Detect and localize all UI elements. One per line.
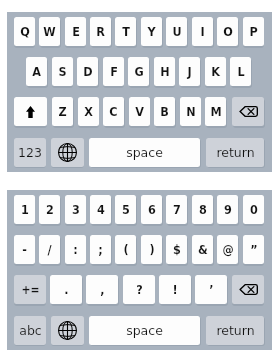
staticText: +=	[21, 283, 40, 297]
staticText: 123	[18, 145, 42, 160]
button[interactable]: D	[77, 57, 98, 86]
button[interactable]: !	[159, 275, 191, 304]
staticText: )	[149, 242, 155, 257]
button[interactable]: 2	[39, 195, 60, 224]
button[interactable]: ’	[195, 275, 227, 304]
button[interactable]: Backspace	[232, 275, 264, 304]
button[interactable]: ?	[123, 275, 155, 304]
staticText: !	[172, 282, 178, 297]
button[interactable]: -	[14, 235, 35, 264]
staticText: L	[237, 64, 245, 79]
button[interactable]: X	[78, 97, 99, 126]
button[interactable]: 8	[192, 195, 213, 224]
staticText: U	[172, 24, 182, 39]
staticText: J	[187, 64, 192, 79]
button[interactable]: 0	[243, 195, 264, 224]
button[interactable]: 4	[90, 195, 111, 224]
staticText: ;	[98, 242, 103, 257]
staticText: W	[43, 24, 56, 39]
button[interactable]: N	[180, 97, 201, 126]
button[interactable]: I	[192, 17, 213, 46]
button[interactable]: 5	[115, 195, 136, 224]
button[interactable]: S	[52, 57, 73, 86]
staticText: 9	[224, 202, 232, 217]
button[interactable]: Y	[141, 17, 162, 46]
button[interactable]: Change keyboard	[51, 316, 84, 345]
button[interactable]: /	[39, 235, 60, 264]
staticText: H	[160, 64, 170, 79]
button[interactable]: ”	[243, 235, 264, 264]
staticText: B	[160, 104, 169, 119]
staticText: 7	[173, 202, 181, 217]
button[interactable]: space	[89, 316, 200, 345]
staticText: ’	[209, 282, 214, 297]
button[interactable]: V	[129, 97, 150, 126]
button[interactable]: 123	[14, 138, 46, 167]
staticText: P	[249, 24, 258, 39]
button[interactable]: P	[243, 17, 264, 46]
staticText: :	[73, 242, 78, 257]
button[interactable]: 3	[65, 195, 86, 224]
button[interactable]: 1	[14, 195, 35, 224]
button[interactable]: O	[217, 17, 238, 46]
button[interactable]: Q	[14, 17, 35, 46]
button[interactable]: )	[141, 235, 162, 264]
staticText: V	[135, 104, 144, 119]
button[interactable]: +=	[14, 275, 46, 304]
button[interactable]: W	[39, 17, 60, 46]
button[interactable]: ,	[86, 275, 118, 304]
button[interactable]: A	[26, 57, 47, 86]
button[interactable]: 7	[166, 195, 187, 224]
button[interactable]: E	[65, 17, 86, 46]
button[interactable]: M	[205, 97, 226, 126]
staticText: space	[126, 323, 163, 338]
button[interactable]: 9	[217, 195, 238, 224]
staticText: ?	[136, 282, 143, 297]
staticText: $	[173, 242, 181, 257]
staticText: 1	[21, 202, 29, 217]
button[interactable]: ;	[90, 235, 111, 264]
staticText: 2	[46, 202, 54, 217]
button[interactable]: return	[206, 138, 264, 167]
button[interactable]: :	[65, 235, 86, 264]
button[interactable]: return	[206, 316, 264, 345]
staticText: space	[126, 145, 163, 160]
staticText: Y	[147, 24, 156, 39]
staticText: D	[83, 64, 93, 79]
button[interactable]: H	[154, 57, 175, 86]
staticText: N	[186, 104, 196, 119]
button[interactable]: @	[217, 235, 238, 264]
staticText: O	[223, 24, 233, 39]
button[interactable]: Change keyboard	[51, 138, 84, 167]
button[interactable]: B	[154, 97, 175, 126]
button[interactable]: U	[166, 17, 187, 46]
button[interactable]: L	[230, 57, 251, 86]
staticText: @	[222, 242, 234, 257]
button[interactable]: space	[89, 138, 200, 167]
staticText: R	[96, 24, 105, 39]
button[interactable]: G	[128, 57, 149, 86]
button[interactable]: Z	[52, 97, 73, 126]
staticText: G	[134, 64, 144, 79]
staticText: 5	[122, 202, 130, 217]
staticText: K	[211, 64, 220, 79]
staticText: C	[109, 104, 118, 119]
button[interactable]: abc	[14, 316, 46, 345]
staticText: 4	[97, 202, 105, 217]
button[interactable]: 6	[141, 195, 162, 224]
button[interactable]: Shift	[14, 97, 47, 126]
button[interactable]: (	[115, 235, 136, 264]
button[interactable]: K	[205, 57, 226, 86]
button[interactable]: .	[50, 275, 82, 304]
button[interactable]: R	[90, 17, 111, 46]
button[interactable]: &	[192, 235, 213, 264]
button[interactable]: C	[103, 97, 124, 126]
staticText: .	[64, 282, 69, 297]
button[interactable]: $	[166, 235, 187, 264]
button[interactable]: J	[179, 57, 200, 86]
staticText: E	[72, 24, 80, 39]
button[interactable]: F	[103, 57, 124, 86]
button[interactable]: Backspace	[232, 97, 264, 126]
staticText: abc	[19, 323, 42, 338]
button[interactable]: T	[115, 17, 136, 46]
